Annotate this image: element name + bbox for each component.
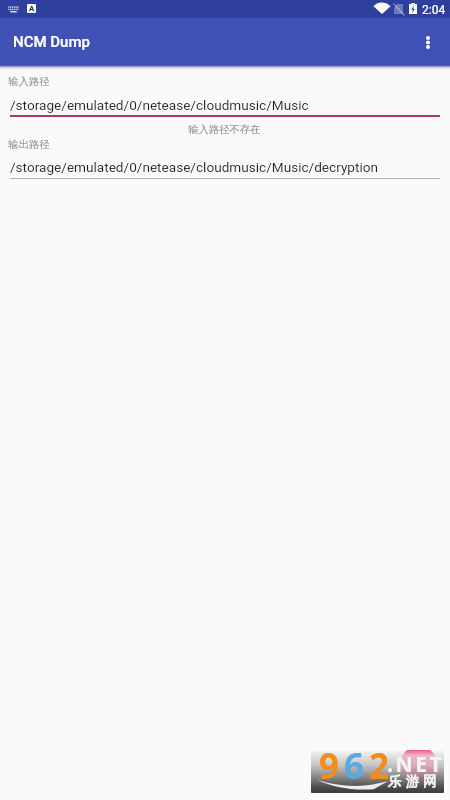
staticText: /storage/emulated/0/netease/cloudmusic/M… [10, 97, 309, 113]
staticText: 输出路径 [8, 138, 50, 151]
staticText: A [29, 4, 35, 13]
staticText: NCM Dump [13, 33, 90, 51]
staticText: .NET [387, 750, 444, 779]
staticText: 乐游网 [388, 773, 441, 790]
button[interactable]: 输入路径 [8, 72, 442, 117]
button[interactable]: 输出路径 [8, 135, 442, 180]
staticText: 6 [344, 750, 369, 785]
staticText: 9 [319, 750, 344, 785]
staticText: 输入路径不存在 [188, 123, 261, 136]
staticText: 2 [369, 750, 394, 785]
button[interactable]: More options [406, 18, 450, 65]
staticText: 输入路径 [8, 75, 50, 88]
staticText: 2:04 [422, 3, 446, 17]
staticText: /storage/emulated/0/netease/cloudmusic/M… [10, 159, 378, 175]
